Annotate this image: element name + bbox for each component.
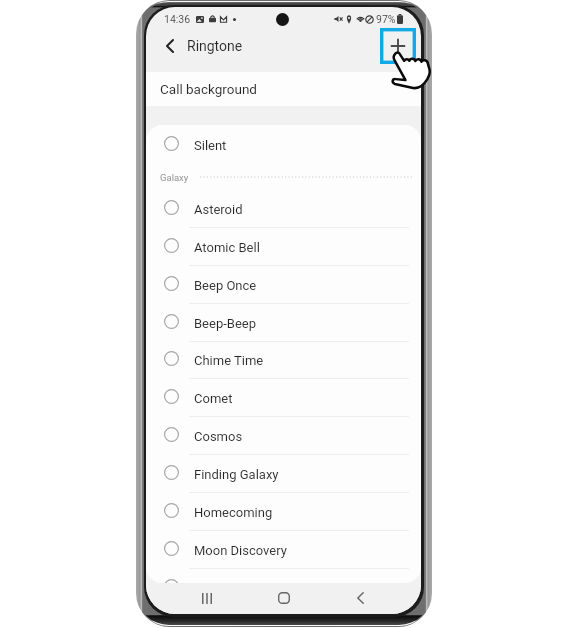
staticText: Galaxy — [160, 172, 189, 183]
staticText: Chime Time — [194, 353, 264, 368]
button[interactable]: Homecoming — [146, 493, 421, 531]
staticText: Asteroid — [194, 202, 243, 217]
button[interactable]: Comet — [146, 379, 421, 417]
button[interactable]: Call background — [146, 72, 421, 106]
staticText: 97% — [376, 13, 396, 25]
button[interactable]: Finding Galaxy — [146, 455, 421, 493]
staticText: Finding Galaxy — [194, 467, 279, 482]
staticText: Atomic Bell — [194, 240, 260, 255]
button[interactable]: Home — [264, 584, 304, 612]
button[interactable]: Asteroid — [146, 190, 421, 228]
button[interactable]: Silent — [146, 126, 421, 164]
button[interactable]: Chime Time — [146, 341, 421, 379]
button[interactable]: Beep Once — [146, 266, 421, 304]
button[interactable]: Back — [152, 30, 188, 61]
staticText: Beep-Beep — [194, 316, 256, 331]
button[interactable]: Moon Discovery — [146, 531, 421, 569]
button[interactable]: Beep-Beep — [146, 304, 421, 342]
staticText: Ringtone — [187, 38, 243, 54]
staticText: Call background — [160, 81, 257, 97]
button[interactable]: Back — [340, 584, 380, 612]
staticText: Beep Once — [194, 278, 257, 293]
button[interactable]: Over the Horizon — [146, 569, 421, 583]
staticText: Homecoming — [194, 505, 273, 520]
button[interactable]: Cosmos — [146, 417, 421, 455]
staticText: Silent — [194, 138, 227, 153]
staticText: Comet — [194, 391, 233, 406]
button[interactable]: Recent apps — [187, 584, 227, 612]
button[interactable]: Atomic Bell — [146, 228, 421, 266]
staticText: 14:36 — [164, 13, 191, 25]
button[interactable]: Add ringtone — [380, 28, 416, 64]
staticText: Cosmos — [194, 429, 243, 444]
staticText: Moon Discovery — [194, 543, 287, 558]
